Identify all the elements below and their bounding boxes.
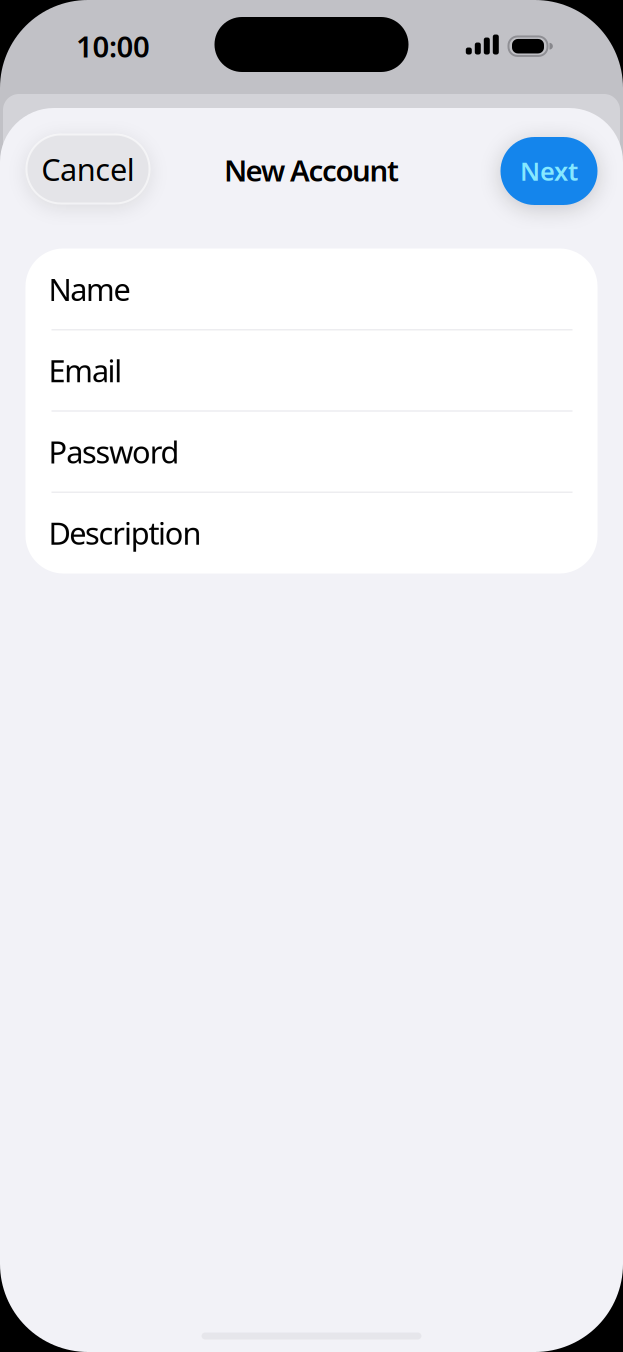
staticText: Next	[520, 154, 578, 188]
button[interactable]: Description	[25, 493, 597, 573]
staticText: Description	[48, 512, 201, 553]
staticText: New Account	[224, 150, 399, 189]
button[interactable]: Password	[25, 412, 597, 492]
staticText: Password	[48, 431, 179, 472]
button[interactable]: Email	[25, 330, 597, 410]
button[interactable]: Next	[500, 137, 597, 205]
staticText: Cancel	[41, 149, 135, 189]
staticText: Name	[48, 269, 131, 309]
staticText: 10:00	[76, 26, 150, 65]
button[interactable]: Name	[25, 249, 597, 329]
button[interactable]: Cancel	[26, 134, 149, 203]
staticText: Email	[48, 350, 122, 391]
